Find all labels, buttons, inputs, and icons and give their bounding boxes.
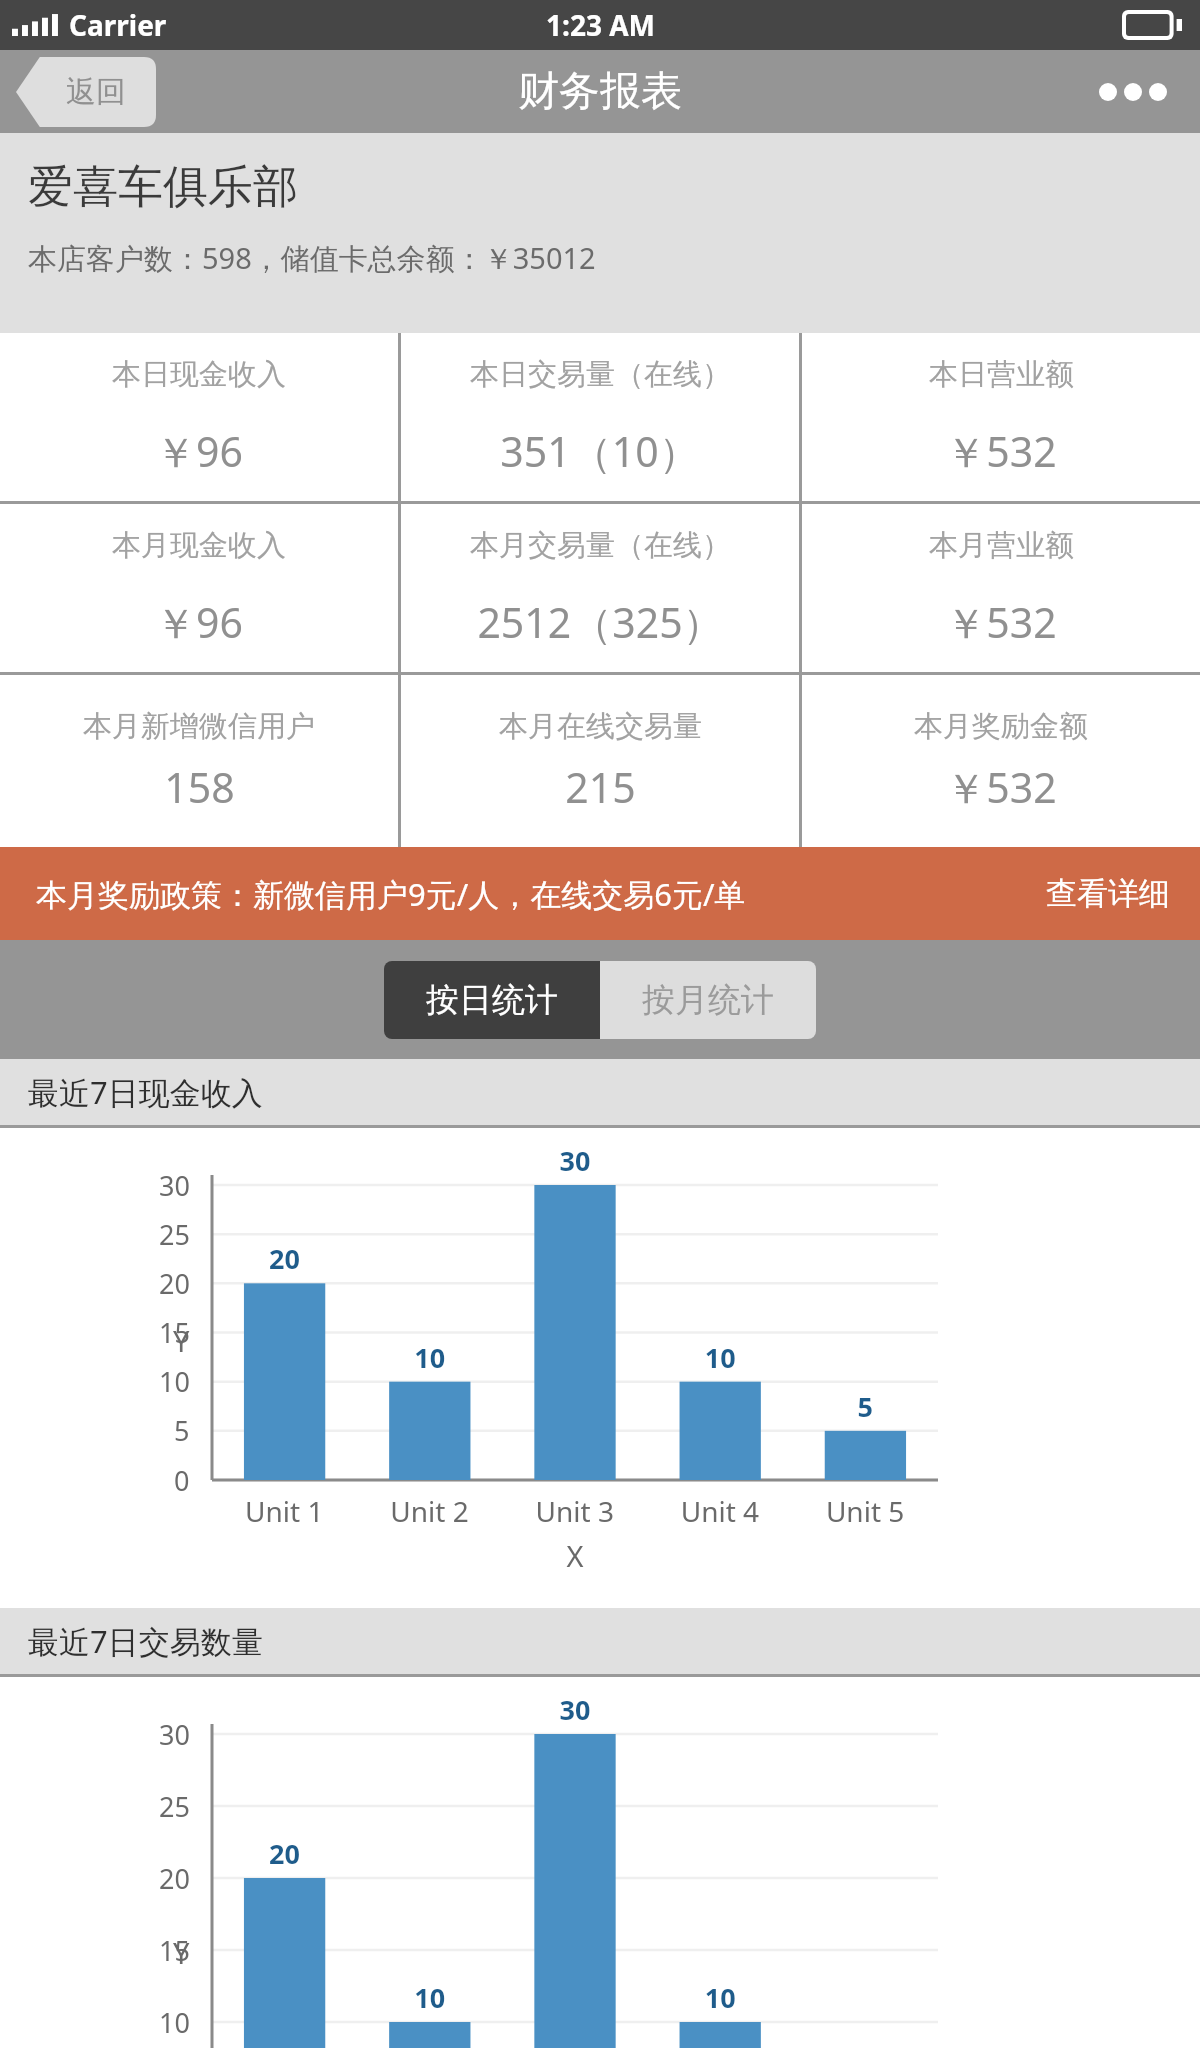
staticText: 本月在线交易量 bbox=[499, 708, 702, 745]
staticText: 本月交易量（在线） bbox=[470, 527, 731, 564]
staticText: ￥96 bbox=[155, 423, 243, 479]
staticText: Carrier bbox=[69, 6, 167, 44]
staticText: 最近7日现金收入 bbox=[28, 1071, 263, 1113]
button[interactable]: 本月新增微信用户 bbox=[0, 675, 398, 847]
button[interactable]: 本日交易量（在线） bbox=[401, 333, 799, 501]
staticText: ￥532 bbox=[945, 594, 1057, 650]
button[interactable]: 本月营业额 bbox=[802, 504, 1200, 672]
button[interactable]: 更多 bbox=[1088, 64, 1178, 120]
staticText: 本月营业额 bbox=[929, 527, 1074, 564]
staticText: 按日统计 bbox=[426, 979, 558, 1021]
button[interactable]: 本月现金收入 bbox=[0, 504, 398, 672]
button[interactable]: 本月交易量（在线） bbox=[401, 504, 799, 672]
staticText: 财务报表 bbox=[518, 66, 682, 118]
button[interactable]: 按日统计 bbox=[384, 961, 600, 1039]
staticText: 查看详细 bbox=[1046, 874, 1170, 913]
staticText: 2512（325） bbox=[477, 594, 724, 650]
staticText: 本月奖励金额 bbox=[914, 708, 1088, 745]
staticText: 爱喜车俱乐部 bbox=[28, 159, 298, 216]
staticText: 215 bbox=[565, 759, 636, 815]
button[interactable]: 本月在线交易量 bbox=[401, 675, 799, 847]
staticText: 351（10） bbox=[500, 423, 700, 479]
staticText: ￥532 bbox=[945, 759, 1057, 815]
button[interactable]: 返回 bbox=[16, 57, 156, 127]
button[interactable]: 本月奖励政策：新微信用户9元/人，在线交易6元/单 bbox=[0, 847, 1200, 940]
staticText: 本日现金收入 bbox=[112, 356, 286, 393]
staticText: 本月奖励政策：新微信用户9元/人，在线交易6元/单 bbox=[36, 873, 746, 915]
staticText: 本月新增微信用户 bbox=[83, 708, 315, 745]
staticText: 本日营业额 bbox=[929, 356, 1074, 393]
staticText: 158 bbox=[164, 759, 235, 815]
staticText: ￥96 bbox=[155, 594, 243, 650]
staticText: 按月统计 bbox=[642, 979, 774, 1021]
staticText: 本日交易量（在线） bbox=[470, 356, 731, 393]
staticText: 返回 bbox=[66, 73, 126, 111]
button[interactable]: 按月统计 bbox=[600, 961, 816, 1039]
button[interactable]: 本月奖励金额 bbox=[802, 675, 1200, 847]
staticText: 最近7日交易数量 bbox=[28, 1620, 263, 1662]
staticText: 1:23 AM bbox=[546, 6, 655, 44]
staticText: ￥532 bbox=[945, 423, 1057, 479]
staticText: 本月现金收入 bbox=[112, 527, 286, 564]
staticText: 本店客户数：598，储值卡总余额：￥35012 bbox=[28, 238, 596, 278]
button[interactable]: 本日营业额 bbox=[802, 333, 1200, 501]
button[interactable]: 本日现金收入 bbox=[0, 333, 398, 501]
